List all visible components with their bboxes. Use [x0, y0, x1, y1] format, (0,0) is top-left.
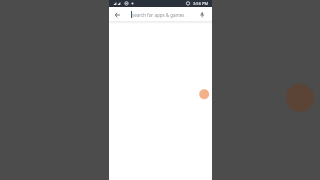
staticText: search for apps & games — [132, 12, 185, 18]
button[interactable] — [109, 7, 125, 21]
button[interactable] — [196, 7, 212, 21]
button[interactable]: search for apps & games — [109, 7, 212, 21]
staticText: 3:56 PM — [193, 1, 209, 6]
